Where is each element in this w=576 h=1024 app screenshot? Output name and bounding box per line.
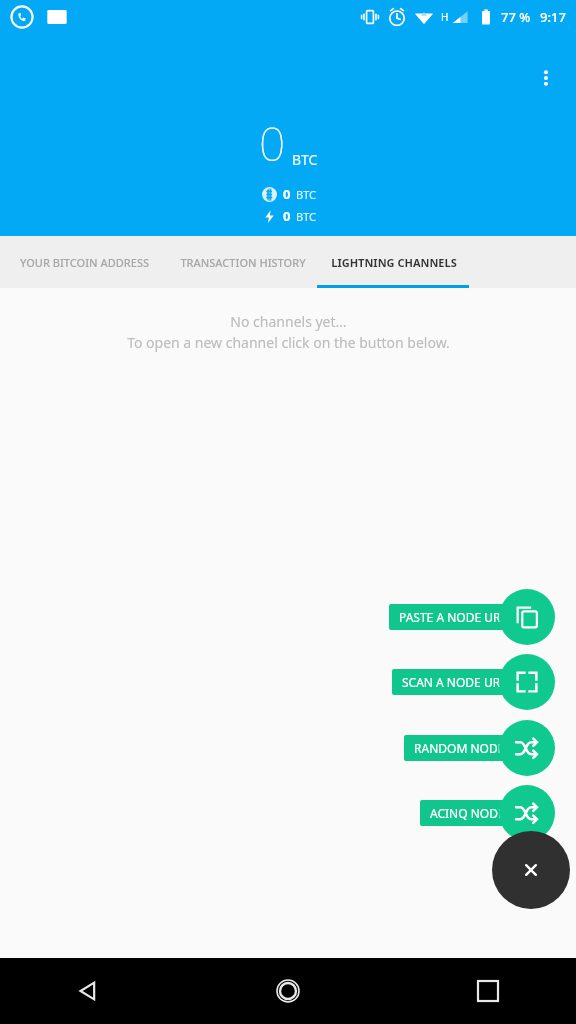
staticText: SCAN A NODE URI (402, 674, 505, 690)
staticText: ACINQ NODE (430, 805, 505, 821)
staticText: LIGHTNING CHANNELS (331, 255, 457, 270)
staticText: PASTE A NODE URI (399, 609, 505, 625)
staticText: RANDOM NODE (414, 740, 505, 756)
staticText: 9:17 (540, 8, 566, 26)
button[interactable]: ACINQ node (346, 785, 576, 841)
button[interactable]: YOUR BITCOIN ADDRESS (0, 236, 168, 288)
staticText: To open a new channel click on the butto… (127, 333, 450, 352)
staticText: BTC (292, 150, 318, 169)
button[interactable]: TRANSACTION HISTORY (168, 236, 318, 288)
staticText: H (441, 10, 449, 24)
staticText: TRANSACTION HISTORY (180, 255, 306, 270)
button[interactable]: Paste a node URI (346, 589, 576, 645)
button[interactable]: Random node (346, 720, 576, 776)
button[interactable]: LIGHTNING CHANNELS (318, 236, 470, 288)
button[interactable]: Close menu (492, 831, 570, 909)
button[interactable]: More options (516, 48, 576, 108)
staticText: YOUR BITCOIN ADDRESS (20, 255, 149, 270)
staticText: 0 (283, 207, 291, 225)
button[interactable]: Recent apps (460, 963, 516, 1019)
staticText: No channels yet… (230, 312, 347, 331)
button[interactable]: Scan a node URI (346, 654, 576, 710)
staticText: BTC (296, 209, 316, 224)
staticText: 0 (283, 185, 291, 203)
button[interactable]: Back (60, 963, 116, 1019)
button[interactable]: Home (260, 963, 316, 1019)
staticText: 0 (259, 112, 286, 175)
staticText: BTC (296, 187, 316, 202)
staticText: 77 % (501, 8, 531, 26)
